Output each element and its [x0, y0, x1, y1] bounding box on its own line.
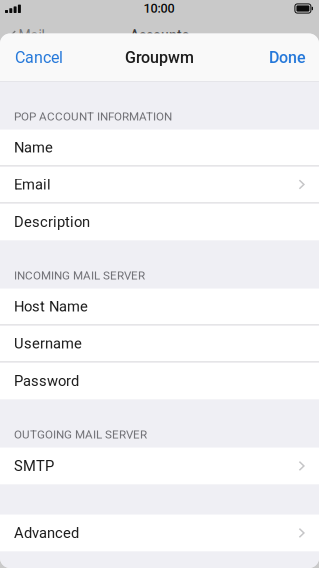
- staticText: OUTGOING MAIL SERVER: [14, 428, 147, 441]
- staticText: Description: [14, 213, 90, 231]
- button[interactable]: SMTP: [0, 447, 319, 484]
- button[interactable]: Description: [0, 203, 319, 240]
- staticText: Cancel: [15, 48, 63, 67]
- staticText: Groupwm: [125, 48, 194, 67]
- staticText: Accounts: [130, 27, 189, 44]
- staticText: Advanced: [14, 524, 79, 542]
- staticText: Password: [14, 372, 79, 390]
- button[interactable]: Mail: [0, 17, 44, 54]
- button[interactable]: Cancel: [0, 33, 77, 81]
- staticText: Host Name: [14, 298, 88, 315]
- button[interactable]: Done: [255, 33, 319, 81]
- staticText: Done: [269, 48, 306, 67]
- staticText: Email: [14, 176, 51, 193]
- button[interactable]: Host Name: [0, 288, 319, 325]
- staticText: INCOMING MAIL SERVER: [14, 269, 145, 282]
- staticText: POP ACCOUNT INFORMATION: [14, 110, 172, 123]
- button[interactable]: Advanced: [0, 514, 319, 551]
- button[interactable]: Email: [0, 166, 319, 203]
- button[interactable]: Username: [0, 325, 319, 362]
- staticText: SMTP: [14, 457, 54, 475]
- staticText: Mail: [18, 27, 44, 44]
- button[interactable]: Password: [0, 362, 319, 399]
- button[interactable]: Name: [0, 129, 319, 166]
- staticText: Name: [14, 139, 53, 156]
- staticText: 10:00: [143, 1, 174, 16]
- staticText: Username: [14, 335, 82, 352]
